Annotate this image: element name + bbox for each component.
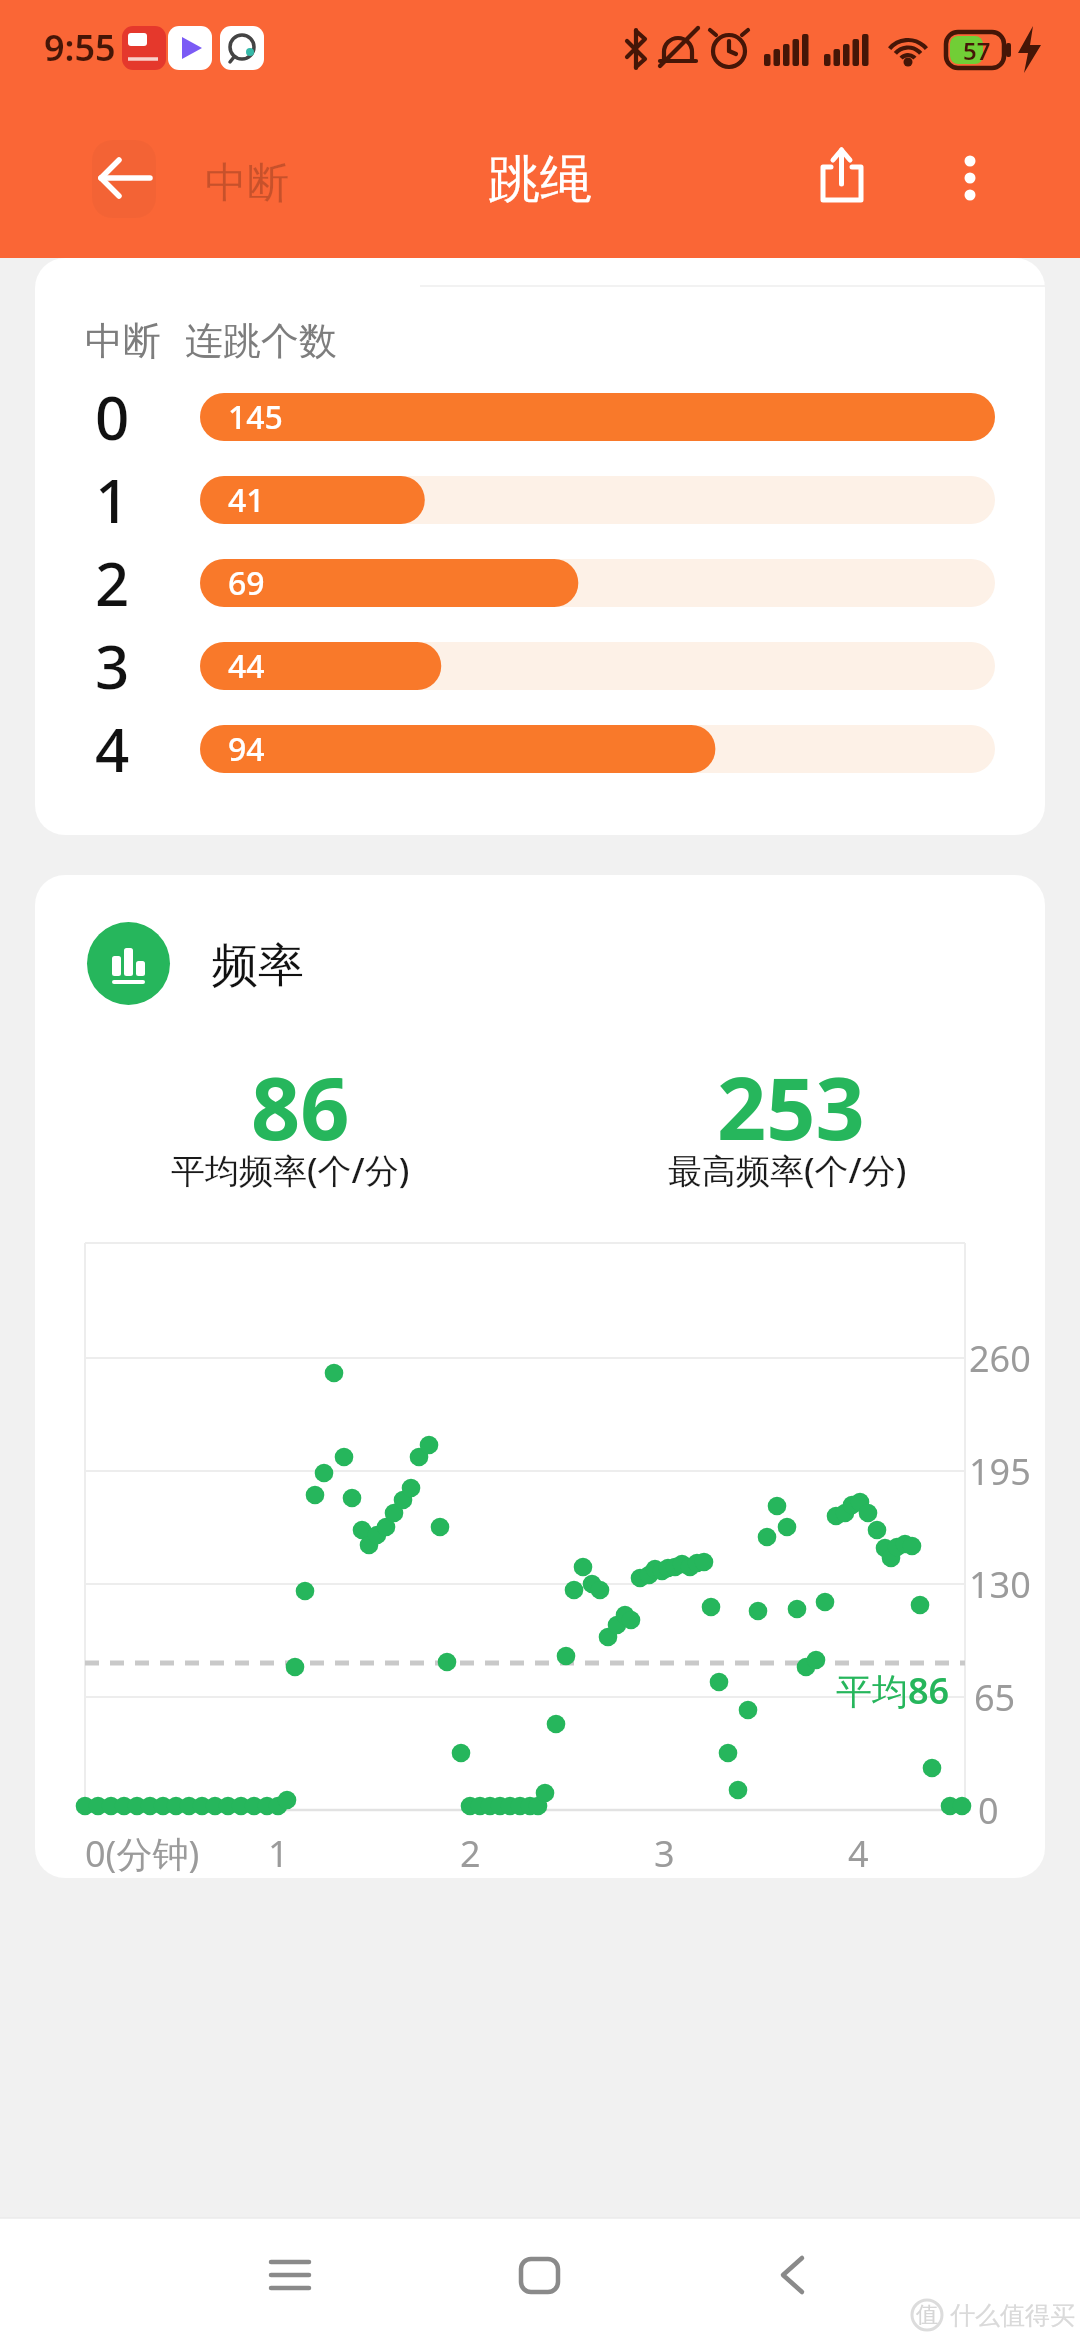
staticText: 65 [974,1673,1016,1722]
staticText: 94 [228,727,265,771]
button[interactable] [724,2220,864,2332]
staticText: 频率 [212,937,304,995]
staticText: 69 [228,561,265,605]
button[interactable] [219,2220,359,2332]
staticText: 连跳个数 [185,317,337,365]
button[interactable] [469,2220,609,2332]
staticText: 1 [95,459,130,541]
staticText: 2 [460,1829,481,1878]
staticText: 跳绳 [488,147,592,213]
staticText: 253 [717,1048,865,1165]
staticText: 平均86 [836,1666,950,1715]
staticText: 3 [95,625,130,707]
staticText: 130 [969,1560,1031,1609]
staticText: 195 [969,1447,1031,1496]
staticText: 2 [95,542,130,624]
staticText: 4 [95,708,130,790]
staticText: 中断 [85,317,161,365]
staticText: 9:55 [44,23,116,72]
staticText: 3 [654,1829,675,1878]
staticText: 57 [963,34,991,67]
button[interactable] [85,144,160,214]
staticText: 中断 [205,157,289,210]
staticText: 44 [228,644,265,688]
button[interactable] [938,142,1002,214]
staticText: 41 [228,478,265,522]
staticText: 0 [95,376,130,458]
staticText: 值 [916,2301,938,2329]
staticText: 什么值得买 [950,2300,1075,2331]
button[interactable] [806,142,878,214]
staticText: 86 [251,1048,350,1165]
staticText: 4 [848,1829,869,1878]
staticText: 最高频率(个/分) [668,1147,907,1193]
staticText: 1 [268,1829,289,1878]
staticText: 145 [228,395,283,439]
staticText: 260 [969,1334,1031,1383]
staticText: 平均频率(个/分) [171,1147,410,1193]
staticText: 0(分钟) [85,1829,200,1878]
staticText: 0 [978,1786,999,1835]
